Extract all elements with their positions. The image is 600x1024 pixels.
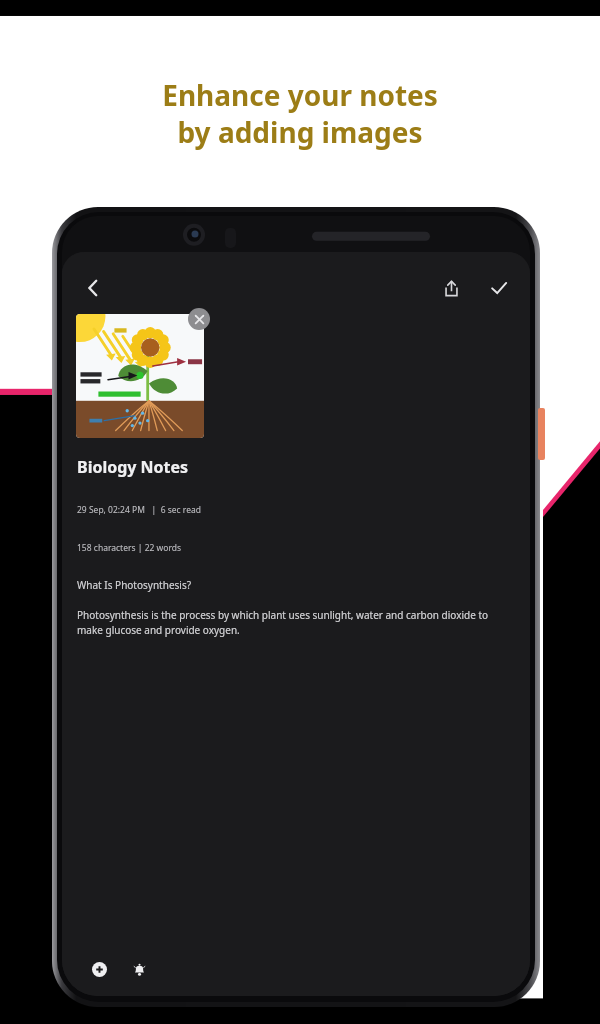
- button[interactable]: Done: [482, 271, 516, 305]
- staticText: What Is Photosynthesis?: [77, 578, 192, 592]
- button[interactable]: Back: [76, 271, 110, 305]
- button[interactable]: Share: [434, 271, 468, 305]
- button[interactable]: Remove image: [188, 308, 210, 330]
- button[interactable]: Reminder: [124, 954, 154, 984]
- staticText: 158 characters | 22 words: [77, 542, 182, 554]
- staticText: 29 Sep, 02:24 PM | 6 sec read: [77, 504, 201, 516]
- staticText: Enhance your notes by adding images: [162, 76, 438, 151]
- staticText: Biology Notes: [77, 456, 189, 478]
- staticText: Photosynthesis is the process by which p…: [77, 608, 515, 637]
- button[interactable]: Add: [84, 954, 114, 984]
- button[interactable]: [76, 314, 204, 438]
